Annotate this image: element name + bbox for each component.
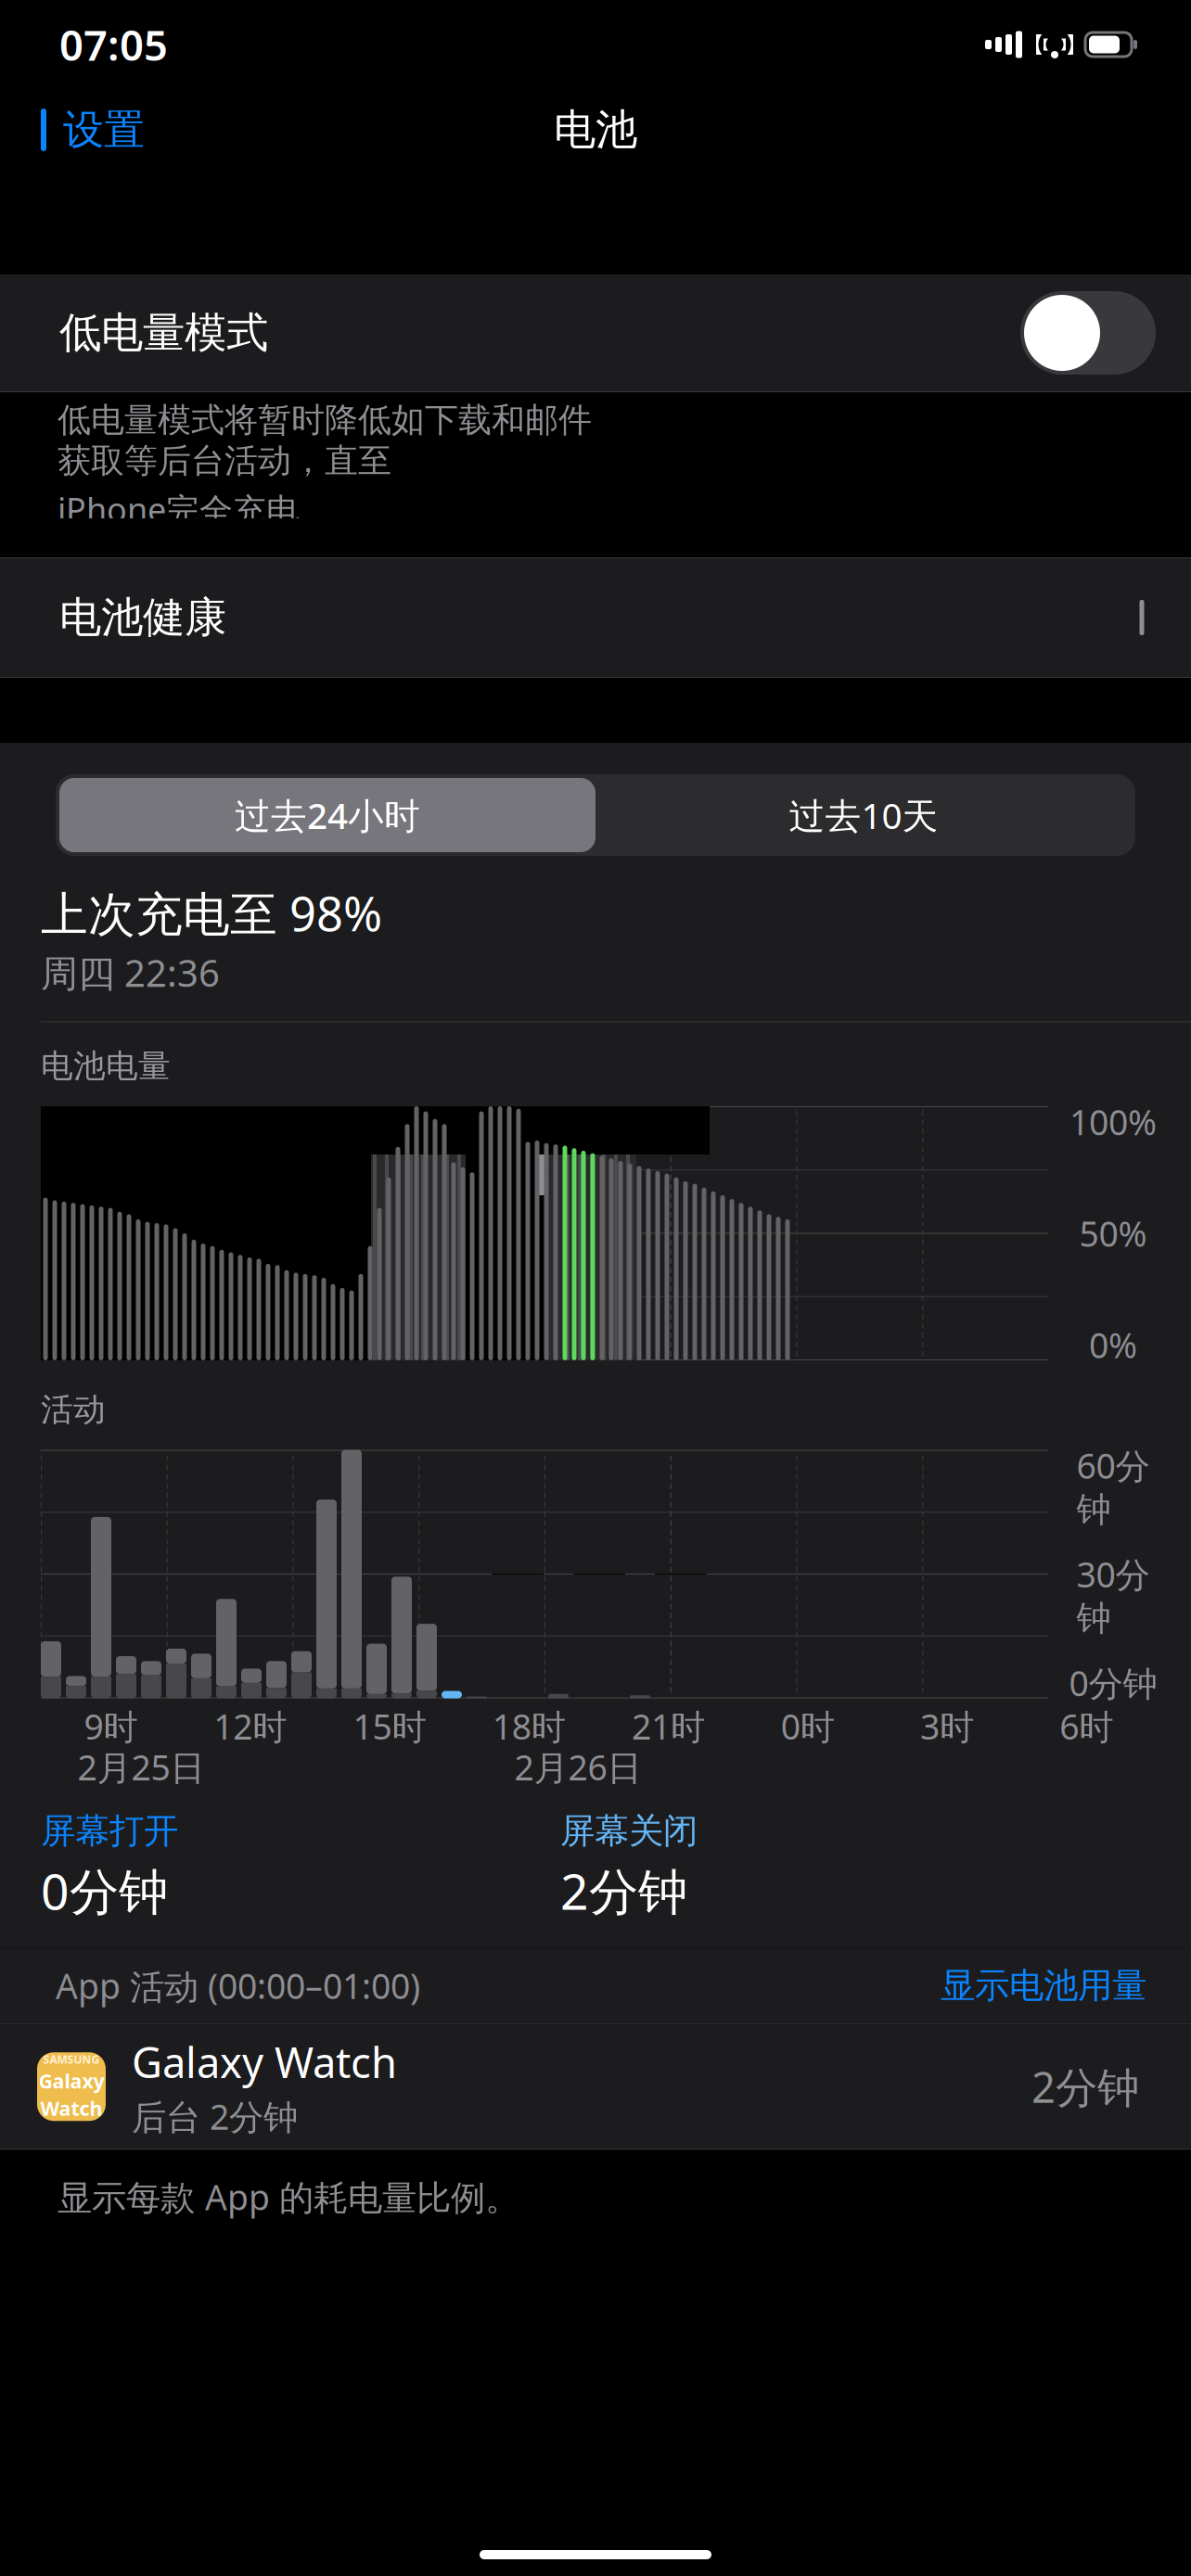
staticText: 显示每款 App 的耗电量比例。 bbox=[58, 2174, 519, 2220]
staticText: 电池电量 bbox=[41, 1046, 171, 1086]
staticText: 07:05 bbox=[59, 17, 168, 72]
staticText: SAMSUNG bbox=[43, 2052, 100, 2067]
staticText: App 活动 (00:00–01:00) bbox=[56, 1963, 420, 2009]
staticText: 屏幕关闭 bbox=[560, 1810, 698, 1852]
staticText: 0% bbox=[1089, 1322, 1137, 1368]
staticText: 2月25日 bbox=[77, 1744, 205, 1790]
staticText: 9时 bbox=[84, 1703, 138, 1749]
staticText: Watch bbox=[40, 2095, 102, 2121]
staticText: iPhone完全充电。 bbox=[58, 487, 333, 532]
button[interactable]: 过去10天 bbox=[595, 778, 1132, 852]
staticText: 18时 bbox=[492, 1703, 566, 1749]
button[interactable]: 设置 bbox=[0, 89, 161, 171]
staticText: 6时 bbox=[1059, 1703, 1113, 1749]
staticText: 0分钟 bbox=[1069, 1660, 1157, 1706]
button[interactable]: 过去24小时 bbox=[59, 778, 595, 852]
staticText: 12时 bbox=[214, 1703, 287, 1749]
staticText: 2分钟 bbox=[560, 1858, 687, 1923]
button[interactable]: 显示电池用量 bbox=[941, 1964, 1146, 2007]
staticText: 15时 bbox=[353, 1703, 426, 1749]
button[interactable]: 低电量模式 bbox=[0, 274, 1191, 391]
button[interactable]: 电池健康 bbox=[0, 558, 1191, 677]
staticText: 50% bbox=[1079, 1210, 1147, 1256]
staticText: 设置 bbox=[63, 105, 145, 155]
staticText: 过去10天 bbox=[789, 791, 938, 839]
staticText: 21时 bbox=[632, 1703, 705, 1749]
staticText: 低电量模式 bbox=[59, 307, 268, 359]
staticText: 0时 bbox=[781, 1703, 835, 1749]
staticText: Galaxy bbox=[38, 2068, 104, 2094]
staticText: 周四 22:36 bbox=[41, 948, 220, 997]
staticText: 60分钟 bbox=[1076, 1442, 1150, 1531]
staticText: 活动 bbox=[41, 1390, 106, 1430]
staticText: 电池 bbox=[554, 104, 637, 156]
staticText: Galaxy Watch bbox=[132, 2034, 397, 2090]
staticText: 2分钟 bbox=[1031, 2059, 1139, 2114]
staticText: 低电量模式将暂时降低如下载和邮件获取等后台活动，直至 bbox=[58, 399, 592, 481]
staticText: 显示电池用量 bbox=[941, 1964, 1146, 2007]
staticText: 上次充电至 98% bbox=[41, 882, 382, 944]
staticText: 30分钟 bbox=[1076, 1551, 1150, 1640]
staticText: 100% bbox=[1069, 1099, 1157, 1145]
staticText: 后台 2分钟 bbox=[132, 2093, 298, 2139]
staticText: 0分钟 bbox=[41, 1858, 168, 1923]
staticText: 2月26日 bbox=[514, 1744, 641, 1790]
staticText: 电池健康 bbox=[59, 592, 226, 643]
staticText: 3时 bbox=[920, 1703, 974, 1749]
staticText: 屏幕打开 bbox=[41, 1810, 178, 1852]
button[interactable]: SAMSUNG bbox=[0, 2024, 1191, 2149]
staticText: 过去24小时 bbox=[235, 791, 420, 839]
